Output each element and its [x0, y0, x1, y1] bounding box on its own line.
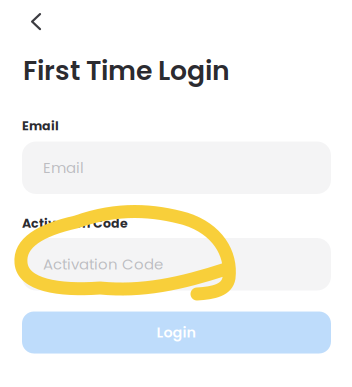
button[interactable]: Login [22, 311, 331, 353]
staticText: Login [156, 322, 196, 343]
staticText: First Time Login [23, 52, 230, 89]
staticText: Email [43, 157, 84, 178]
staticText: Activation Code [22, 214, 128, 232]
staticText: Email [22, 117, 59, 134]
staticText: Activation Code [43, 254, 163, 275]
button[interactable]: Back [9, 4, 59, 39]
